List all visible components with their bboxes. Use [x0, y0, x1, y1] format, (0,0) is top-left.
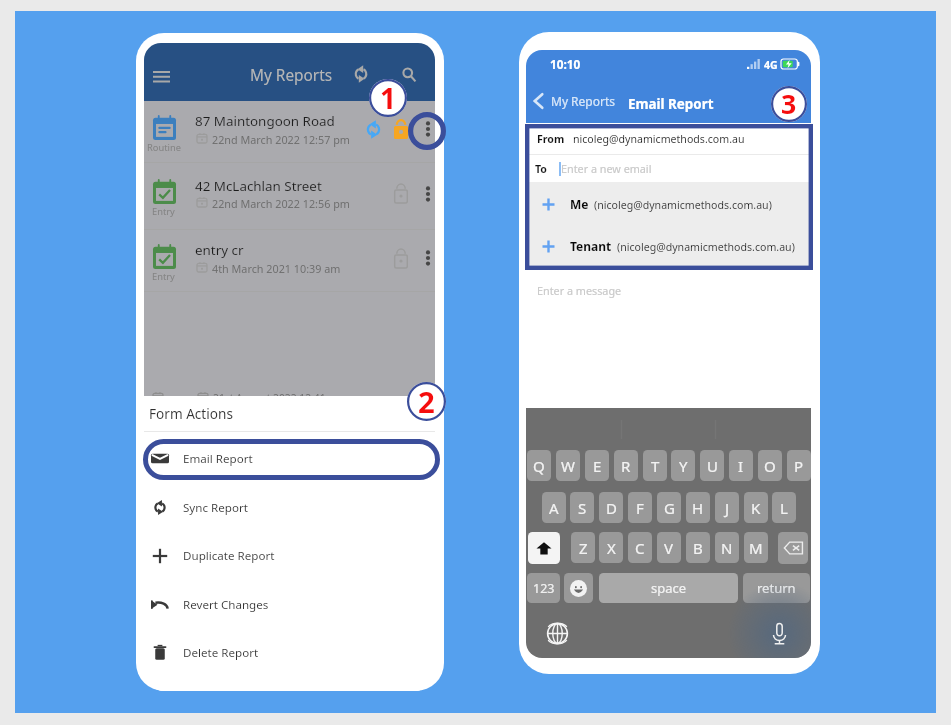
staticText: 21st August 2022 12:41 pm [213, 391, 345, 405]
button[interactable]: Entry [144, 230, 435, 292]
staticText: Entry [152, 270, 175, 283]
staticText: C [635, 538, 645, 558]
button[interactable]: Dictation [772, 623, 787, 645]
staticText: To [535, 162, 547, 176]
button[interactable]: Shift [528, 532, 560, 564]
staticText: J [725, 498, 730, 518]
button[interactable]: Duplicate Report [144, 531, 435, 580]
staticText: Entry [152, 205, 175, 218]
button[interactable]: Routine [144, 101, 435, 163]
staticText: Routine [147, 141, 181, 154]
button[interactable]: 123 [527, 573, 560, 603]
button[interactable]: I [729, 450, 753, 481]
button[interactable]: Change keyboard [547, 623, 568, 644]
staticText: S [578, 498, 587, 518]
button[interactable]: A [542, 492, 566, 523]
staticText: Email Report [628, 95, 714, 113]
staticText: Sync Report [183, 500, 248, 516]
button[interactable]: Entry [144, 163, 435, 230]
staticText: My Reports [551, 93, 616, 109]
button[interactable]: U [700, 450, 724, 481]
staticText: D [606, 498, 617, 518]
staticText: (nicoleg@dynamicmethods.com.au) [594, 198, 772, 212]
staticText: W [561, 456, 575, 476]
staticText: A [549, 498, 559, 518]
staticText: K [751, 498, 761, 518]
button[interactable]: N [715, 532, 739, 563]
staticText: 4th March 2021 10:39 am [212, 261, 341, 276]
button[interactable]: Sync [345, 57, 377, 89]
button[interactable]: space [599, 573, 738, 603]
staticText: My Reports [250, 65, 333, 86]
staticText: H [692, 498, 704, 518]
button[interactable]: R [614, 450, 638, 481]
button[interactable]: D [599, 492, 623, 523]
staticText: 3 [781, 86, 797, 122]
staticText: U [707, 456, 718, 476]
button[interactable]: Menu [144, 51, 172, 87]
staticText: Tenant [570, 238, 612, 254]
staticText: G [664, 498, 675, 518]
button[interactable]: O [758, 450, 782, 481]
staticText: R [621, 456, 631, 476]
button[interactable]: return [743, 573, 810, 603]
button[interactable]: Z [571, 532, 595, 563]
staticText: Revert Changes [183, 597, 269, 613]
button[interactable]: L [772, 492, 796, 523]
staticText: V [664, 538, 674, 558]
staticText: Z [579, 538, 588, 558]
staticText: Enter a new email [561, 161, 652, 176]
button[interactable]: Email Report [144, 434, 435, 483]
button[interactable]: More options [417, 247, 435, 269]
staticText: space [651, 579, 687, 597]
button[interactable]: S [570, 492, 594, 523]
staticText: entry cr [195, 241, 244, 259]
staticText: 10:10 [550, 56, 581, 72]
staticText: Duplicate Report [183, 548, 275, 564]
button[interactable]: M [744, 532, 768, 563]
button[interactable]: Backspace [778, 532, 808, 564]
staticText: Y [679, 456, 688, 476]
button[interactable]: Y [671, 450, 695, 481]
staticText: 1 [380, 79, 397, 117]
button[interactable]: V [657, 532, 681, 563]
staticText: I [738, 456, 744, 476]
button[interactable]: B [686, 532, 710, 563]
button[interactable]: Q [527, 450, 551, 481]
staticText: P [794, 456, 804, 476]
staticText: Enter a message [537, 283, 622, 298]
staticText: 42 McLachlan Street [195, 177, 322, 195]
staticText: Me [570, 196, 589, 212]
button[interactable]: Emoji [564, 573, 593, 603]
staticText: return [757, 579, 796, 597]
button[interactable]: Delete Report [144, 628, 435, 677]
staticText: X [607, 538, 616, 558]
staticText: (nicoleg@dynamicmethods.com.au) [617, 240, 795, 254]
staticText: 22nd March 2022 12:56 pm [212, 196, 350, 211]
button[interactable]: More options [417, 118, 435, 140]
button[interactable]: J [715, 492, 739, 523]
button[interactable]: Back to My Reports [530, 87, 625, 115]
staticText: O [764, 456, 776, 476]
button[interactable]: Search [394, 57, 426, 89]
staticText: F [636, 498, 644, 518]
staticText: B [693, 538, 703, 558]
button[interactable]: T [643, 450, 667, 481]
button[interactable]: X [599, 532, 623, 563]
staticText: From [537, 132, 565, 146]
button[interactable]: W [556, 450, 580, 481]
button[interactable]: Sync Report [144, 483, 435, 532]
button[interactable]: More options [417, 183, 435, 205]
button[interactable]: G [657, 492, 681, 523]
button[interactable]: Me [526, 183, 811, 225]
button[interactable]: F [628, 492, 652, 523]
button[interactable]: Revert Changes [144, 580, 435, 629]
button[interactable]: C [628, 532, 652, 563]
button[interactable]: E [585, 450, 609, 481]
button[interactable]: Tenant [526, 225, 811, 267]
button[interactable]: P [787, 450, 811, 481]
button[interactable]: K [744, 492, 768, 523]
staticText: T [651, 456, 660, 476]
button[interactable]: H [686, 492, 710, 523]
staticText: nicoleg@dynamicmethods.com.au [573, 132, 745, 146]
